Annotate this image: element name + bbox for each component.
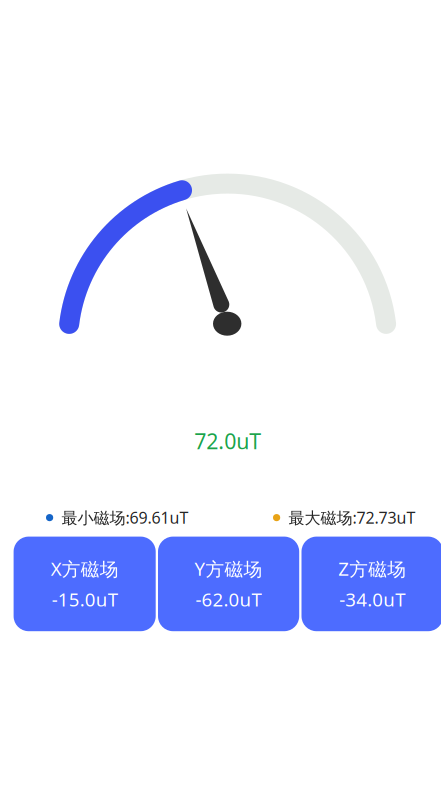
button[interactable]: Y方磁场: [158, 537, 299, 631]
staticText: Y方磁场: [195, 556, 263, 581]
button[interactable]: Z方磁场: [301, 537, 441, 631]
staticText: -62.0uT: [196, 587, 262, 612]
staticText: 最小磁场:69.61uT: [62, 507, 189, 528]
staticText: 最大磁场:72.73uT: [289, 507, 416, 528]
staticText: X方磁场: [51, 556, 119, 581]
staticText: -34.0uT: [339, 587, 405, 612]
staticText: -15.0uT: [52, 587, 118, 612]
button[interactable]: X方磁场: [14, 537, 156, 631]
staticText: Z方磁场: [338, 556, 406, 581]
staticText: 72.0uT: [194, 427, 261, 455]
